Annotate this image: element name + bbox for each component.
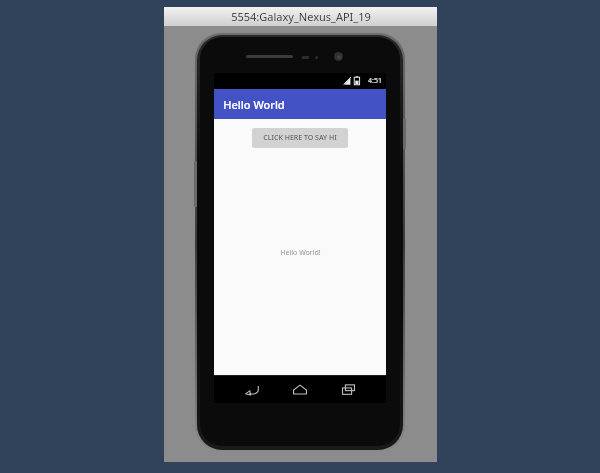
staticText: Hello World!: [280, 248, 321, 258]
button[interactable]: Back: [236, 376, 268, 402]
staticText: 5554:Galaxy_Nexus_API_19: [231, 9, 371, 24]
button[interactable]: CLICK HERE TO SAY HI: [252, 128, 348, 148]
button[interactable]: Recent apps: [332, 376, 364, 402]
staticText: CLICK HERE TO SAY HI: [263, 133, 337, 143]
staticText: Hello World: [223, 97, 285, 112]
button[interactable]: Home: [284, 376, 316, 402]
staticText: 4:51: [368, 76, 382, 86]
